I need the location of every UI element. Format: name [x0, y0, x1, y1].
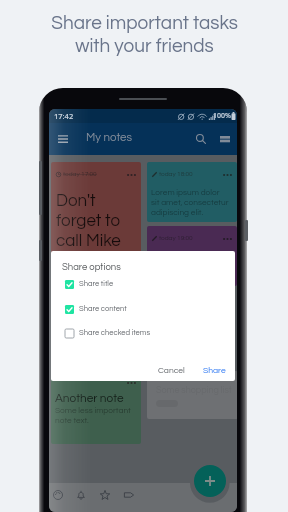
- staticText: Don't forget to call Mike: [56, 192, 140, 249]
- button[interactable]: Change view: [213, 123, 237, 155]
- button[interactable]: today 19:00: [147, 226, 237, 286]
- staticText: 17:42: [54, 111, 74, 121]
- button[interactable]: Share title: [51, 275, 235, 293]
- staticText: 100%: [213, 111, 231, 121]
- staticText: Share content: [79, 305, 127, 313]
- staticText: Lorem ipsum dolor sit amet, consectetur …: [151, 188, 229, 217]
- staticText: today 19:00: [159, 235, 193, 242]
- staticText: Share important tasks with your friends: [51, 13, 238, 56]
- button[interactable]: Favourites: [94, 484, 116, 506]
- staticText: Some less important note text.: [55, 406, 131, 425]
- button[interactable]: today 18:00: [147, 162, 237, 222]
- staticText: Share title: [79, 280, 114, 288]
- button[interactable]: Labels: [118, 484, 140, 506]
- button[interactable]: Reminders: [70, 484, 92, 506]
- button[interactable]: Share content: [51, 300, 235, 318]
- staticText: Share options: [62, 262, 121, 272]
- button[interactable]: [51, 267, 141, 376]
- staticText: Share: [203, 366, 226, 375]
- button[interactable]: Create new note: [194, 465, 226, 497]
- button[interactable]: Search: [189, 123, 213, 155]
- staticText: Cancel: [158, 366, 185, 375]
- staticText: today 17:00: [63, 171, 97, 178]
- button[interactable]: Share: [197, 362, 232, 379]
- button[interactable]: today 17:00: [51, 162, 141, 264]
- button[interactable]: Note colour palette: [49, 484, 69, 506]
- staticText: Another note: [55, 392, 124, 404]
- staticText: Share checked items: [79, 329, 151, 337]
- staticText: today 18:00: [159, 171, 193, 178]
- button[interactable]: Some shopping list: [147, 371, 237, 419]
- button[interactable]: Share checked items: [51, 324, 235, 342]
- button[interactable]: Open navigation menu: [51, 123, 75, 155]
- button[interactable]: Cancel: [152, 362, 191, 379]
- staticText: My notes: [86, 132, 133, 144]
- button[interactable]: Another note: [51, 376, 141, 444]
